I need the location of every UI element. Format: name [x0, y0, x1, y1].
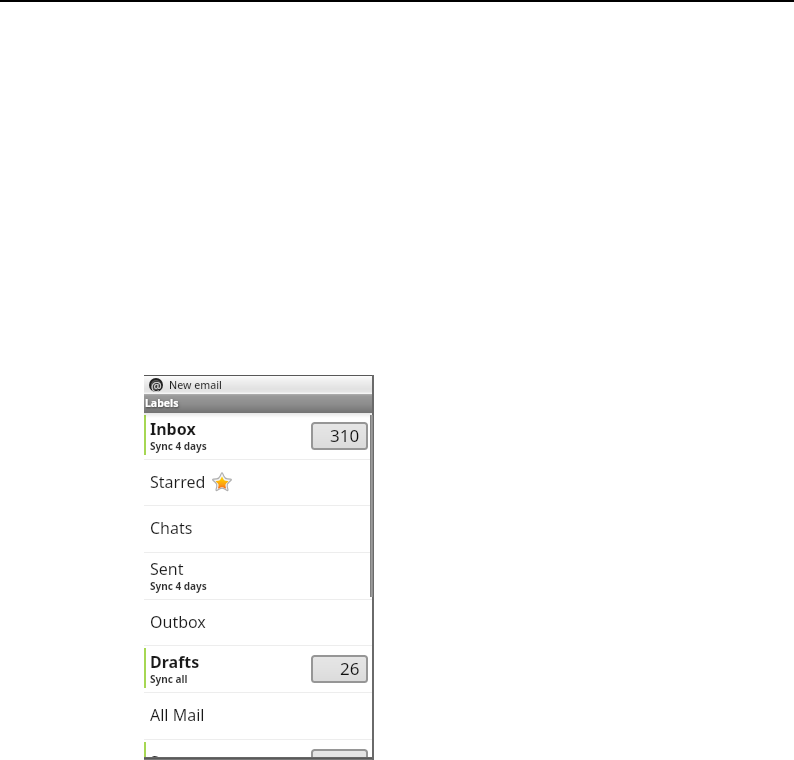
staticText: 26 [340, 657, 360, 680]
staticText: Labels [145, 396, 179, 410]
staticText: Sync all [150, 672, 188, 686]
staticText: @ [151, 378, 162, 392]
button[interactable]: Spam [144, 740, 374, 760]
staticText: Drafts [150, 651, 200, 673]
staticText: Sync 4 days [150, 439, 207, 453]
staticText: Spam [150, 751, 195, 760]
button[interactable]: Outbox [144, 600, 374, 646]
button[interactable]: Inbox [144, 413, 374, 459]
staticText: 310 [330, 424, 360, 447]
staticText: Sent [150, 558, 184, 580]
button[interactable]: Drafts [144, 646, 374, 692]
button[interactable]: Sent [144, 553, 374, 599]
staticText: 5 [350, 751, 360, 760]
staticText: Outbox [150, 611, 206, 633]
staticText: New email [169, 378, 222, 392]
staticText: Starred [150, 471, 206, 493]
button[interactable]: All Mail [144, 693, 374, 739]
button[interactable]: Chats [144, 506, 374, 552]
other: Starred [212, 472, 232, 492]
button[interactable]: Compose new email [144, 376, 374, 394]
other: Compose new email [149, 378, 163, 392]
staticText: Inbox [150, 418, 196, 440]
staticText: All Mail [150, 704, 205, 726]
staticText: Sync 4 days [150, 579, 207, 593]
button[interactable]: Starred [144, 460, 374, 506]
staticText: Chats [150, 517, 193, 539]
